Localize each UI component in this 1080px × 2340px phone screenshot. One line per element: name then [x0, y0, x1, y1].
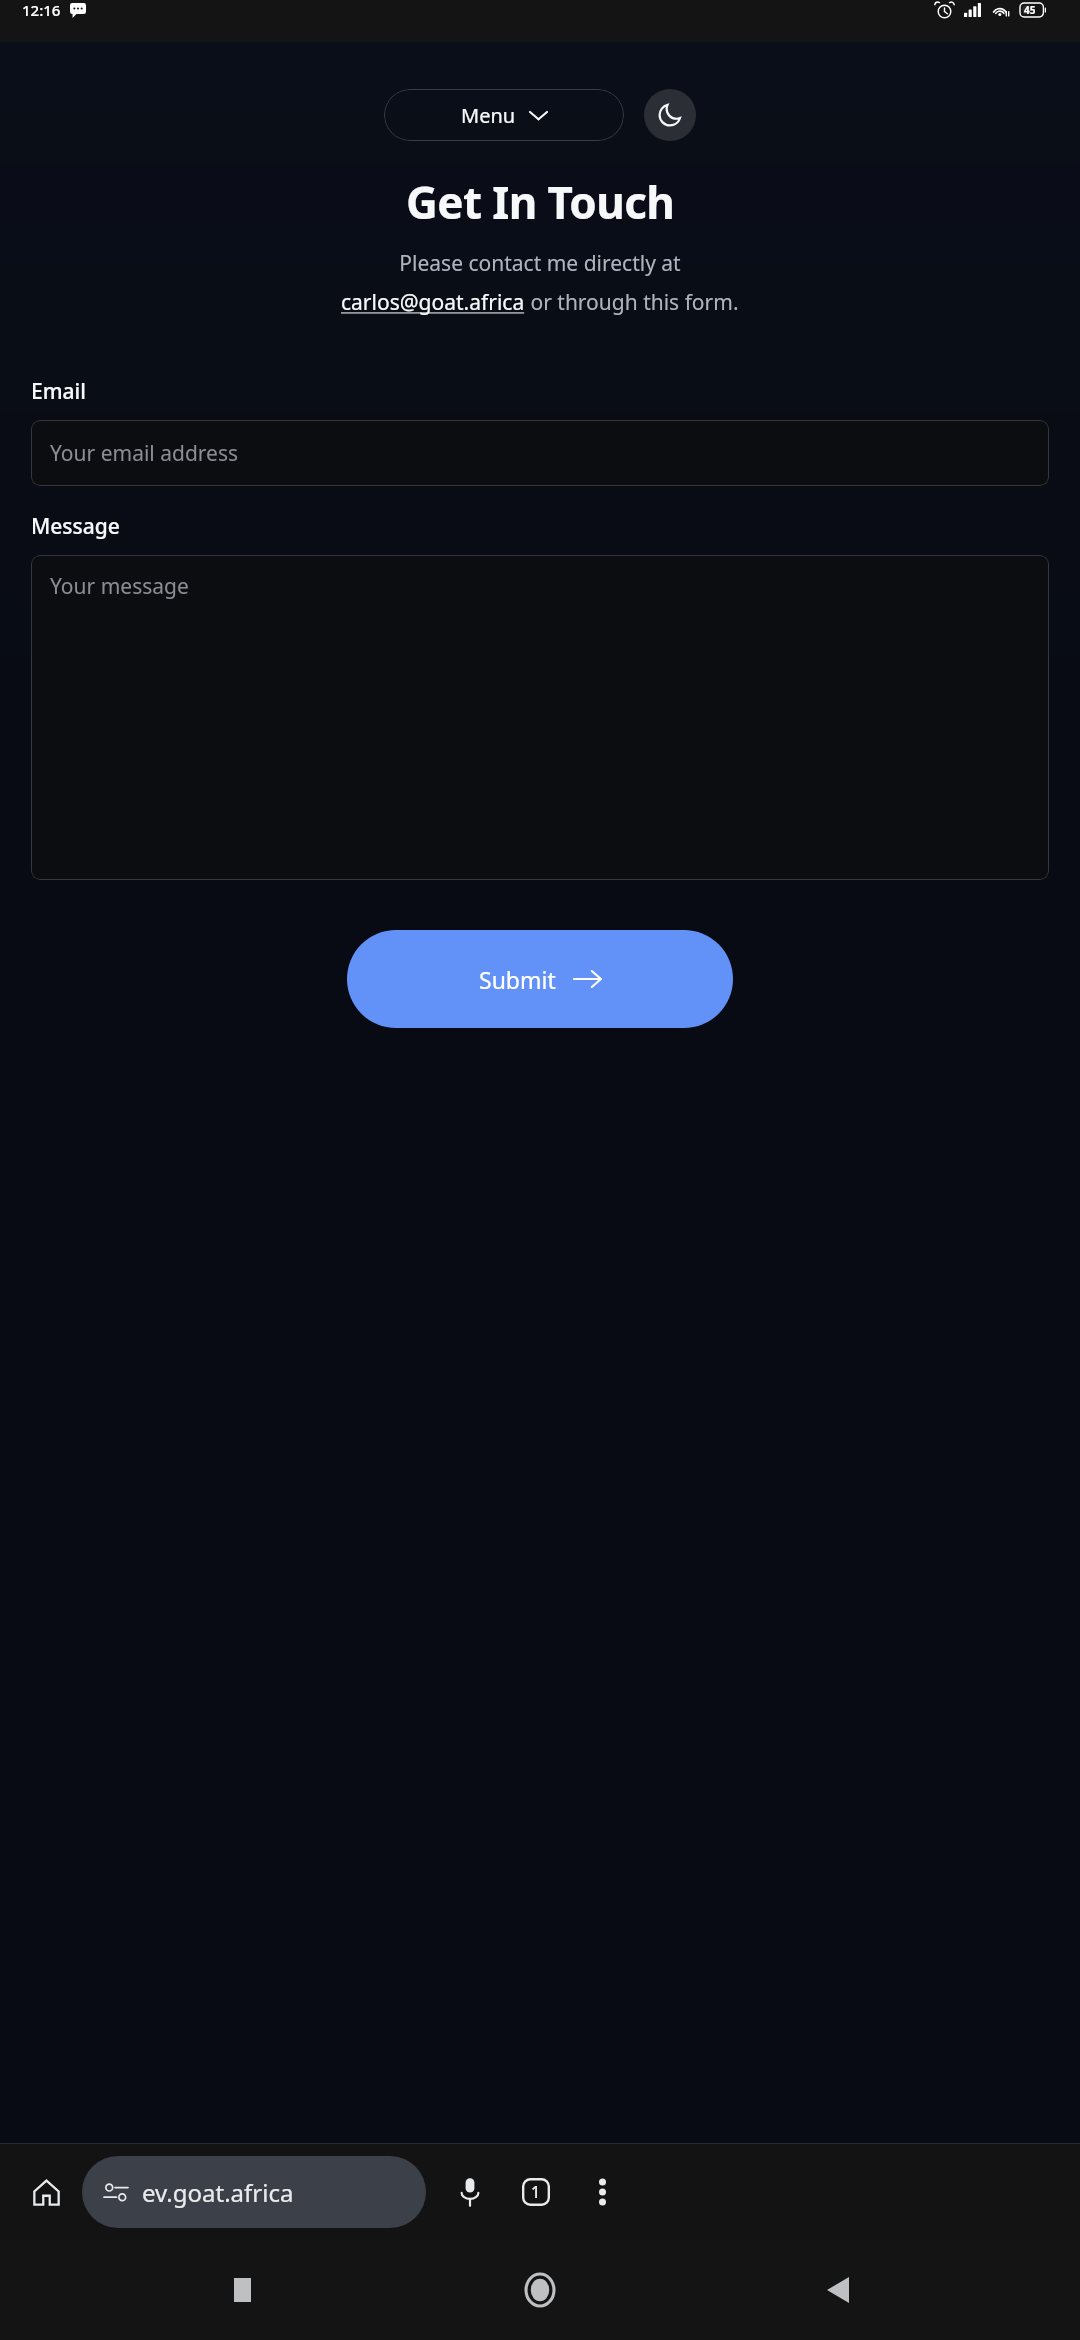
staticText: ev.goat.africa	[142, 2176, 294, 2209]
staticText: Message	[31, 512, 120, 541]
button[interactable]: Menu	[384, 89, 624, 141]
staticText: 12:16	[22, 0, 61, 20]
button[interactable]: Home	[504, 2254, 576, 2326]
staticText: Please contact me directly at	[399, 249, 681, 278]
staticText: Your message	[50, 572, 189, 601]
button[interactable]: Your message	[31, 555, 1049, 880]
button[interactable]: Home	[20, 2166, 72, 2218]
button[interactable]: Voice search	[442, 2164, 498, 2220]
button[interactable]: Recent apps	[206, 2254, 278, 2326]
button[interactable]: Submit	[347, 930, 733, 1028]
staticText: Email	[31, 377, 86, 406]
staticText: Menu	[461, 102, 516, 129]
button[interactable]: ev.goat.africa	[82, 2156, 426, 2228]
staticText: Submit	[479, 964, 556, 995]
button[interactable]: Tabs	[508, 2164, 564, 2220]
button[interactable]: Toggle dark mode	[644, 89, 696, 141]
staticText: 1	[531, 2181, 541, 2203]
staticText: or through this form.	[525, 288, 739, 317]
button[interactable]: Your email address	[31, 420, 1049, 486]
button[interactable]: carlos@goat.africa	[341, 288, 525, 317]
button[interactable]: More options	[574, 2164, 630, 2220]
staticText: 45	[1024, 3, 1036, 17]
button[interactable]: Back	[802, 2254, 874, 2326]
staticText: Get In Touch	[406, 172, 675, 232]
staticText: Your email address	[50, 439, 239, 468]
staticText: carlos@goat.africa	[341, 288, 525, 317]
